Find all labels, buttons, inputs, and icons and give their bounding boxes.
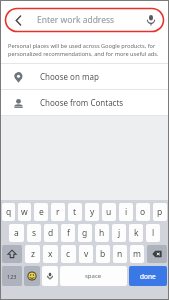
staticText: m — [133, 248, 141, 260]
button[interactable]: k — [129, 224, 143, 242]
staticText: q — [6, 206, 12, 218]
staticText: Enter work address — [37, 14, 115, 26]
button[interactable]: w — [18, 203, 31, 221]
button[interactable]: p — [153, 203, 167, 221]
staticText: j — [118, 227, 121, 239]
staticText: done — [140, 272, 156, 281]
button[interactable]: j — [112, 224, 126, 242]
button[interactable]: x — [43, 245, 58, 263]
button[interactable]: done — [129, 266, 167, 286]
button[interactable]: l — [146, 224, 160, 242]
button[interactable]: f — [61, 224, 75, 242]
button[interactable]: i — [119, 203, 133, 221]
staticText: s — [32, 227, 37, 239]
button[interactable]: a — [9, 224, 24, 242]
staticText: r — [56, 206, 60, 218]
button[interactable]: s — [27, 224, 41, 242]
staticText: a — [14, 227, 19, 239]
button[interactable]: g — [78, 224, 92, 242]
button[interactable]: n — [113, 245, 127, 263]
staticText: e — [39, 206, 44, 218]
button[interactable]: z — [25, 245, 40, 263]
staticText: v — [84, 248, 89, 260]
button[interactable]: 123 — [2, 266, 22, 286]
staticText: l — [152, 227, 155, 239]
button[interactable]: o — [136, 203, 150, 221]
staticText: k — [134, 227, 139, 239]
button[interactable]: u — [102, 203, 116, 221]
staticText: b — [100, 248, 106, 260]
button[interactable]: b — [96, 245, 110, 263]
staticText: y — [90, 206, 95, 218]
staticText: z — [31, 248, 35, 260]
button[interactable]: Choose on map — [1, 64, 168, 89]
staticText: h — [99, 227, 105, 239]
button[interactable]: y — [85, 203, 99, 221]
button[interactable]: r — [51, 203, 65, 221]
button[interactable]: v — [79, 245, 93, 263]
staticText: Choose on map — [40, 71, 99, 82]
button[interactable]: Emoji — [24, 266, 40, 286]
staticText: w — [21, 206, 28, 218]
button[interactable]: t — [68, 203, 82, 221]
button[interactable]: Choose from Contacts — [1, 90, 168, 115]
button[interactable]: Shift — [2, 245, 22, 263]
staticText: t — [73, 206, 77, 218]
staticText: o — [140, 206, 146, 218]
staticText: c — [66, 248, 71, 260]
button[interactable]: q — [2, 203, 15, 221]
staticText: p — [157, 206, 163, 218]
button[interactable]: Backspace — [147, 245, 167, 263]
button[interactable]: h — [95, 224, 109, 242]
staticText: f — [67, 227, 70, 239]
button[interactable]: Back — [7, 9, 29, 31]
staticText: n — [117, 248, 123, 260]
staticText: i — [125, 206, 128, 218]
staticText: 123 — [7, 273, 17, 280]
button[interactable]: Voice search — [140, 9, 162, 31]
staticText: Personal places will be used across Goog… — [8, 42, 161, 58]
staticText: space — [85, 272, 102, 280]
button[interactable]: m — [130, 245, 144, 263]
staticText: d — [48, 227, 54, 239]
staticText: u — [106, 206, 112, 218]
button[interactable]: e — [34, 203, 48, 221]
button[interactable]: d — [44, 224, 58, 242]
button[interactable]: Dictate — [42, 266, 58, 286]
staticText: g — [82, 227, 88, 239]
button[interactable]: c — [61, 245, 76, 263]
staticText: x — [48, 248, 53, 260]
staticText: Choose from Contacts — [40, 97, 124, 108]
button[interactable]: space — [60, 266, 127, 286]
